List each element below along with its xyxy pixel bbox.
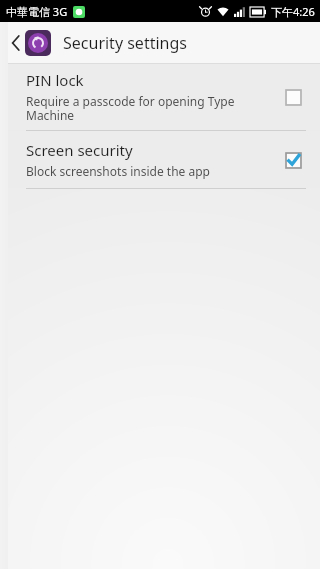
staticText: Block screenshots inside the app	[26, 163, 210, 179]
staticText: PIN lock	[26, 70, 84, 90]
button[interactable]: Screen security	[8, 131, 320, 188]
staticText: Require a passcode for opening Type Mach…	[26, 93, 235, 124]
button[interactable]: Navigate up	[8, 22, 55, 63]
button[interactable]: Checked	[280, 147, 306, 173]
button[interactable]: Unchecked	[280, 84, 306, 110]
staticText: 下午4:26	[271, 4, 315, 19]
staticText: Security settings	[63, 32, 187, 54]
button[interactable]: PIN lock	[8, 64, 320, 130]
staticText: 中華電信 3G	[6, 4, 68, 19]
staticText: Screen security	[26, 140, 133, 160]
